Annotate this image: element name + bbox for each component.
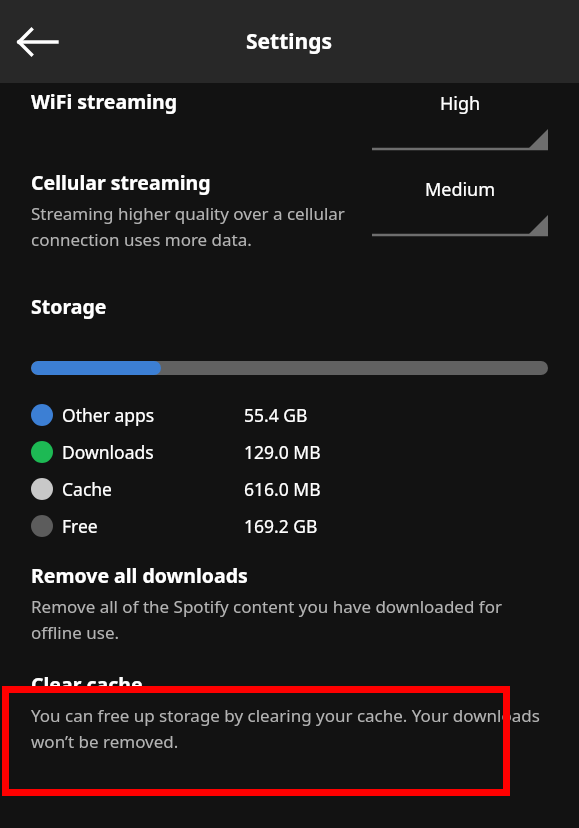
staticText: High <box>372 91 548 116</box>
staticText: Other apps <box>62 403 155 427</box>
staticText: Streaming higher quality over a cellular… <box>31 202 360 251</box>
button[interactable]: Clear cache <box>31 671 548 753</box>
staticText: 169.2 GB <box>244 514 318 538</box>
staticText: 55.4 GB <box>244 403 308 427</box>
staticText: Storage <box>31 293 107 320</box>
staticText: 616.0 MB <box>244 477 321 501</box>
button[interactable]: High <box>372 91 548 152</box>
staticText: Free <box>62 514 98 538</box>
staticText: Clear cache <box>31 671 143 698</box>
staticText: Remove all downloads <box>31 562 248 589</box>
staticText: You can free up storage by clearing your… <box>31 704 548 753</box>
button[interactable]: Remove all downloads <box>31 562 548 644</box>
staticText: WiFi streaming <box>31 88 178 115</box>
staticText: Cache <box>62 477 112 501</box>
staticText: Downloads <box>62 440 154 464</box>
button[interactable]: Back <box>14 18 62 66</box>
staticText: Cellular streaming <box>31 169 211 196</box>
staticText: Remove all of the Spotify content you ha… <box>31 595 548 644</box>
staticText: 129.0 MB <box>244 440 321 464</box>
staticText: Medium <box>372 177 548 202</box>
button[interactable]: Medium <box>372 177 548 238</box>
staticText: Settings <box>246 27 333 56</box>
